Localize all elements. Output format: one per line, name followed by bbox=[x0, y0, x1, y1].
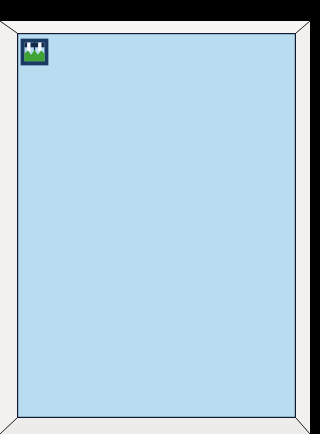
button[interactable] bbox=[0, 0, 320, 434]
other: Missing image placeholder bbox=[0, 0, 320, 434]
